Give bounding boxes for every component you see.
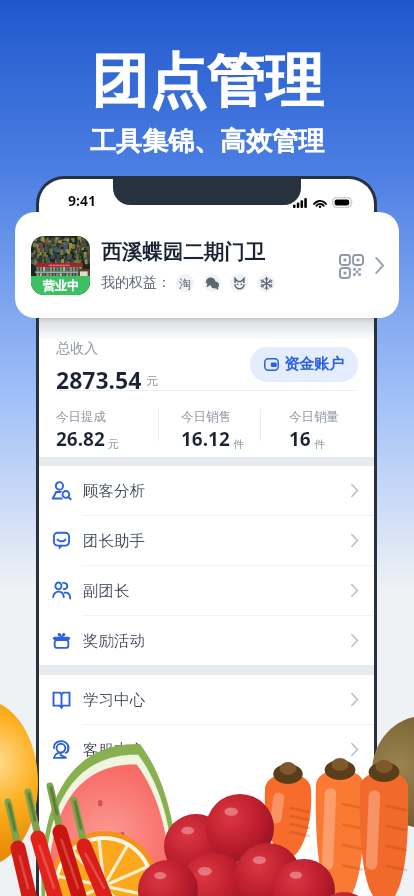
button[interactable]: 营业中: [15, 212, 399, 318]
staticText: 淘: [179, 276, 191, 291]
button[interactable]: 团长助手: [39, 516, 374, 566]
staticText: 客服中心: [83, 740, 145, 760]
staticText: 件: [233, 437, 244, 451]
button[interactable]: 学习中心: [39, 675, 374, 725]
staticText: 16: [289, 426, 311, 452]
staticText: 元: [108, 437, 119, 451]
button[interactable]: QR code: [337, 252, 365, 280]
staticText: 元: [146, 373, 158, 388]
staticText: 奖励活动: [83, 631, 145, 651]
staticText: 9:41: [68, 191, 96, 210]
staticText: 营业中: [43, 278, 79, 293]
staticText: 团长助手: [83, 531, 145, 551]
staticText: 今日提成: [56, 409, 106, 425]
button[interactable]: 客服中心: [39, 725, 374, 774]
staticText: 今日销售: [181, 409, 231, 425]
button[interactable]: 奖励活动: [39, 616, 374, 665]
button[interactable]: 顾客分析: [39, 466, 374, 516]
staticText: 26.82: [56, 426, 105, 452]
staticText: 团点管理: [0, 45, 414, 118]
button[interactable]: 资金账户: [250, 347, 358, 382]
staticText: 工具集锦、高效管理: [0, 125, 414, 158]
staticText: 今日销量: [289, 409, 339, 425]
staticText: 西溪蝶园二期门卫: [101, 239, 265, 265]
staticText: 我的权益：: [101, 274, 171, 292]
staticText: 16.12: [181, 426, 230, 452]
button[interactable]: 副团长: [39, 566, 374, 616]
staticText: 2873.54: [56, 364, 142, 390]
staticText: 资金账户: [284, 355, 344, 374]
staticText: 副团长: [83, 581, 130, 601]
staticText: 学习中心: [83, 690, 145, 710]
staticText: 总收入: [56, 340, 98, 358]
staticText: 顾客分析: [83, 481, 145, 501]
staticText: 件: [314, 437, 325, 451]
